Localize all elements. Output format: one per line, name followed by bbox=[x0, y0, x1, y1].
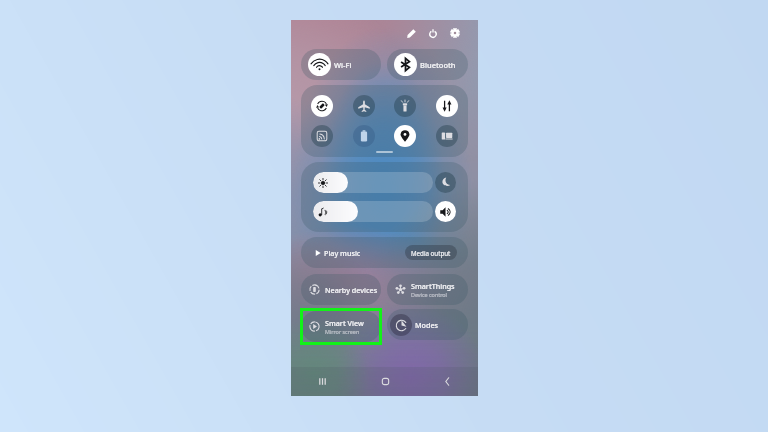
button[interactable]: Mobile data bbox=[436, 95, 458, 117]
staticText: Play music bbox=[324, 248, 361, 258]
staticText: Device control bbox=[411, 291, 447, 298]
button[interactable]: Power saving bbox=[353, 125, 375, 147]
button[interactable]: Home bbox=[354, 367, 416, 396]
button[interactable]: Sound bbox=[435, 201, 456, 222]
button[interactable]: SmartThings bbox=[387, 274, 468, 305]
button[interactable]: Smart View bbox=[301, 311, 381, 342]
button[interactable]: Dark mode bbox=[435, 172, 456, 193]
staticText: Modes bbox=[415, 320, 439, 330]
button[interactable]: Modes bbox=[387, 309, 468, 340]
button[interactable]: Volume bbox=[313, 201, 433, 222]
button[interactable]: Edit bbox=[403, 25, 419, 41]
button[interactable]: Power off bbox=[425, 25, 441, 41]
staticText: Mirror screen bbox=[325, 328, 360, 335]
button[interactable]: Media output bbox=[405, 245, 457, 260]
button[interactable]: NFC bbox=[311, 125, 333, 147]
button[interactable]: Nearby devices bbox=[301, 274, 381, 305]
staticText: Wi-Fi bbox=[334, 60, 352, 70]
button[interactable]: Airplane mode bbox=[353, 95, 375, 117]
button[interactable]: Auto rotate bbox=[311, 95, 333, 117]
button[interactable]: Recent apps bbox=[291, 367, 354, 396]
staticText: Nearby devices bbox=[325, 285, 378, 295]
button[interactable]: Bluetooth bbox=[387, 49, 468, 80]
button[interactable]: Wi-Fi bbox=[301, 49, 381, 80]
button[interactable]: Location bbox=[394, 125, 416, 147]
staticText: SmartThings bbox=[411, 281, 455, 291]
staticText: Media output bbox=[411, 249, 451, 257]
staticText: Bluetooth bbox=[420, 60, 456, 70]
button[interactable]: Back bbox=[416, 367, 478, 396]
button[interactable]: Link to Windows bbox=[436, 125, 458, 147]
button[interactable]: Play music bbox=[301, 237, 468, 268]
button[interactable]: Brightness bbox=[313, 172, 433, 193]
button[interactable]: Flashlight bbox=[394, 95, 416, 117]
staticText: Smart View bbox=[325, 318, 364, 328]
button[interactable]: Settings bbox=[447, 25, 463, 41]
